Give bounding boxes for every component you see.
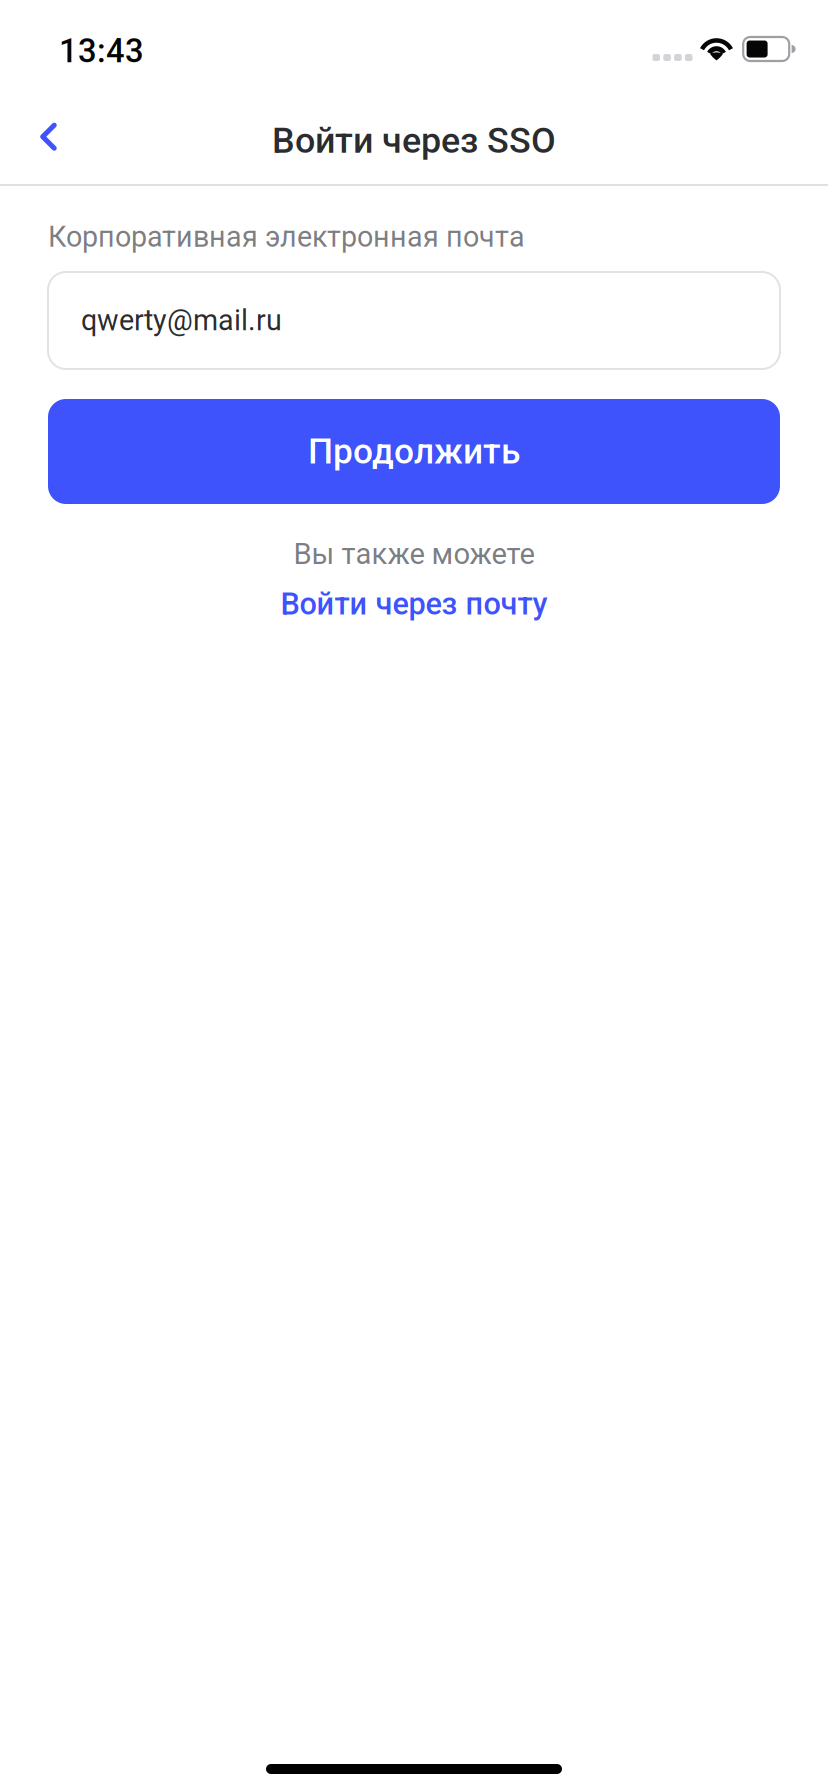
button[interactable]: Назад xyxy=(21,104,109,170)
staticText: Продолжить xyxy=(308,431,520,472)
staticText: Вы также можете xyxy=(293,537,534,571)
staticText: Корпоративная электронная почта xyxy=(48,220,525,254)
staticText: qwerty@mail.ru xyxy=(81,304,282,337)
staticText: Войти через почту xyxy=(280,586,547,622)
button[interactable]: Продолжить xyxy=(48,399,780,504)
button[interactable]: Войти через почту xyxy=(48,582,780,626)
staticText: 13:43 xyxy=(59,32,144,70)
staticText: Войти через SSO xyxy=(272,119,556,161)
